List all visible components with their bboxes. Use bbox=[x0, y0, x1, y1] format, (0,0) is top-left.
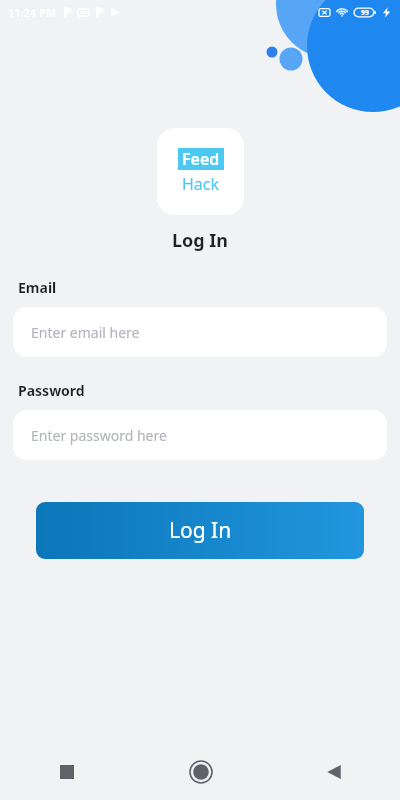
staticText: Hack bbox=[182, 173, 220, 195]
button[interactable]: Enter password here bbox=[13, 410, 387, 460]
button[interactable]: Enter email here bbox=[13, 307, 387, 357]
staticText: 99 bbox=[361, 8, 370, 18]
button[interactable]: Log In bbox=[36, 502, 364, 559]
staticText: 11:24 PM bbox=[8, 5, 56, 20]
staticText: Log In bbox=[172, 228, 229, 253]
button[interactable]: Home bbox=[134, 744, 267, 800]
staticText: Log In bbox=[169, 516, 232, 545]
staticText: Enter email here bbox=[31, 323, 140, 342]
button[interactable]: Recents bbox=[0, 744, 134, 800]
button[interactable]: Back bbox=[267, 744, 400, 800]
staticText: Email bbox=[18, 278, 57, 297]
staticText: Feed bbox=[182, 148, 220, 170]
staticText: Password bbox=[18, 381, 85, 400]
staticText: Enter password here bbox=[31, 426, 167, 445]
